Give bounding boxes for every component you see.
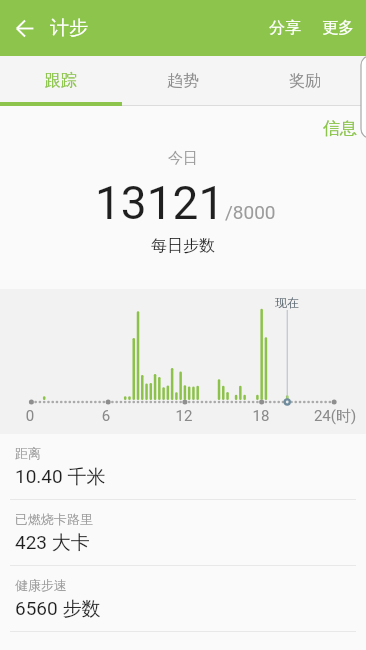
button[interactable]: 分享 xyxy=(261,8,309,48)
staticText: 今日 xyxy=(0,149,366,168)
button[interactable]: 奖励 xyxy=(244,56,366,106)
staticText: 0 xyxy=(0,407,70,425)
staticText: /8000 xyxy=(225,201,276,223)
staticText: 分享 xyxy=(269,18,301,38)
staticText: 距离 xyxy=(15,445,41,461)
staticText: 10.40 千米 xyxy=(15,465,106,489)
staticText: 6560 步数 xyxy=(15,597,101,621)
button[interactable]: Back xyxy=(0,0,50,56)
button[interactable]: 趋势 xyxy=(122,56,244,106)
staticText: 423 大卡 xyxy=(15,531,90,555)
staticText: 计步 xyxy=(50,16,88,40)
staticText: 6 xyxy=(66,407,146,425)
staticText: 13121 xyxy=(95,176,225,230)
staticText: 每日步数 xyxy=(0,236,366,256)
staticText: 12 xyxy=(144,407,224,425)
staticText: 信息 xyxy=(323,118,357,139)
staticText: 健康步速 xyxy=(15,577,67,593)
button[interactable]: 距离 xyxy=(0,434,366,500)
staticText: 24(时) xyxy=(295,407,366,426)
button[interactable]: 已燃烧卡路里 xyxy=(0,500,366,566)
button[interactable]: 跟踪 xyxy=(0,56,122,106)
staticText: 趋势 xyxy=(167,71,199,91)
staticText: 18 xyxy=(221,407,301,425)
staticText: 奖励 xyxy=(289,71,321,91)
button[interactable]: 更多 xyxy=(309,8,366,48)
staticText: 已燃烧卡路里 xyxy=(15,511,93,527)
button[interactable]: 健康步速 xyxy=(0,566,366,632)
staticText: 现在 xyxy=(275,295,299,310)
staticText: 跟踪 xyxy=(45,71,77,91)
staticText: 更多 xyxy=(322,18,354,38)
button[interactable]: 信息 xyxy=(309,114,366,143)
